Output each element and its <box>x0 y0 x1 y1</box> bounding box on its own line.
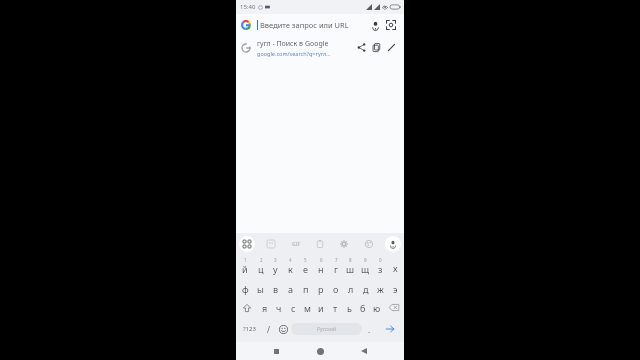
staticText: п <box>303 283 309 295</box>
button[interactable]: Voice input <box>385 236 401 252</box>
button[interactable]: 9 <box>358 255 373 276</box>
staticText: 4 <box>289 257 292 263</box>
staticText: о <box>333 283 339 295</box>
button[interactable]: а <box>283 276 298 297</box>
staticText: я <box>262 302 268 314</box>
button[interactable]: ?123 <box>238 318 261 340</box>
button[interactable]: Copy <box>369 40 384 55</box>
staticText: 7 <box>335 257 338 263</box>
staticText: у <box>273 263 278 275</box>
button[interactable]: 1 <box>237 255 253 276</box>
staticText: гугл - Поиск в Google <box>257 39 329 49</box>
button[interactable]: Themes <box>361 236 377 252</box>
button[interactable]: х <box>388 255 403 276</box>
button[interactable]: . <box>362 318 377 340</box>
staticText: й <box>242 263 248 275</box>
staticText: Введите запрос или URL <box>260 20 367 30</box>
button[interactable]: 3 <box>268 255 283 276</box>
button[interactable]: Settings <box>336 236 352 252</box>
button[interactable]: 2 <box>253 255 268 276</box>
staticText: б <box>360 302 366 314</box>
button[interactable]: ь <box>342 297 356 318</box>
staticText: ю <box>373 302 381 314</box>
staticText: 6 <box>320 257 323 263</box>
staticText: 8 <box>349 257 352 263</box>
staticText: google.com/search?q=гугл... <box>257 50 331 57</box>
button[interactable]: 7 <box>328 255 343 276</box>
button[interactable]: Clipboard <box>312 236 328 252</box>
staticText: с <box>291 302 296 314</box>
staticText: и <box>318 302 324 314</box>
staticText: 2 <box>260 257 263 263</box>
staticText: . <box>368 324 371 335</box>
button[interactable]: д <box>358 276 373 297</box>
button[interactable]: о <box>328 276 343 297</box>
button[interactable]: я <box>257 297 272 318</box>
button[interactable]: Back <box>353 342 375 360</box>
staticText: Русский <box>317 326 337 333</box>
staticText: к <box>288 263 293 275</box>
staticText: ч <box>276 302 282 314</box>
staticText: ь <box>347 302 352 314</box>
staticText: ж <box>377 283 384 295</box>
button[interactable]: ф <box>237 276 253 297</box>
staticText: з <box>378 263 383 275</box>
button[interactable]: ы <box>253 276 268 297</box>
button[interactable]: л <box>343 276 358 297</box>
staticText: м <box>304 302 311 314</box>
button[interactable]: Emoji <box>276 318 291 340</box>
staticText: / <box>267 324 270 335</box>
button[interactable]: в <box>268 276 283 297</box>
staticText: 1 <box>244 257 247 263</box>
button[interactable]: и <box>314 297 328 318</box>
button[interactable]: Share <box>354 40 369 55</box>
staticText: щ <box>361 263 370 275</box>
button[interactable]: 5 <box>298 255 313 276</box>
staticText: т <box>333 302 338 314</box>
staticText: ф <box>242 283 249 295</box>
button[interactable]: с <box>286 297 300 318</box>
staticText: GIF <box>292 241 301 248</box>
button[interactable]: ж <box>373 276 388 297</box>
staticText: в <box>273 283 279 295</box>
button[interactable]: 4 <box>283 255 298 276</box>
staticText: н <box>318 263 324 275</box>
button[interactable]: Voice search <box>367 17 383 33</box>
button[interactable]: гугл - Поиск в Google <box>236 35 404 60</box>
button[interactable]: 8 <box>343 255 358 276</box>
button[interactable]: GIF <box>288 236 304 252</box>
button[interactable]: Keyboard tools <box>239 236 255 252</box>
button[interactable]: Home <box>309 342 331 360</box>
button[interactable]: ю <box>370 297 384 318</box>
button[interactable]: 0 <box>373 255 388 276</box>
button[interactable]: Stickers <box>263 236 279 252</box>
button[interactable]: п <box>298 276 313 297</box>
staticText: 5 <box>304 257 307 263</box>
button[interactable]: Edit query <box>384 40 399 55</box>
button[interactable]: Shift <box>237 297 257 318</box>
staticText: ш <box>346 263 355 275</box>
staticText: 15:40 <box>240 3 256 11</box>
button[interactable]: ч <box>272 297 286 318</box>
staticText: 0 <box>379 257 382 263</box>
button[interactable]: р <box>313 276 328 297</box>
button[interactable]: Backspace <box>384 297 403 318</box>
staticText: г <box>334 263 338 275</box>
button[interactable]: м <box>300 297 314 318</box>
staticText: х <box>393 262 398 274</box>
button[interactable]: б <box>356 297 370 318</box>
button[interactable]: Русский <box>291 323 362 335</box>
button[interactable]: / <box>261 318 276 340</box>
staticText: э <box>393 283 398 295</box>
button[interactable]: 6 <box>313 255 328 276</box>
button[interactable]: Recents <box>265 342 287 360</box>
button[interactable]: Go <box>377 318 402 340</box>
staticText: е <box>303 263 308 275</box>
staticText: 9 <box>364 257 367 263</box>
button[interactable]: э <box>388 276 403 297</box>
staticText: ы <box>257 283 264 295</box>
staticText: ?123 <box>243 325 256 333</box>
button[interactable]: т <box>328 297 342 318</box>
staticText: а <box>288 283 294 295</box>
button[interactable]: Google Lens <box>383 17 399 33</box>
